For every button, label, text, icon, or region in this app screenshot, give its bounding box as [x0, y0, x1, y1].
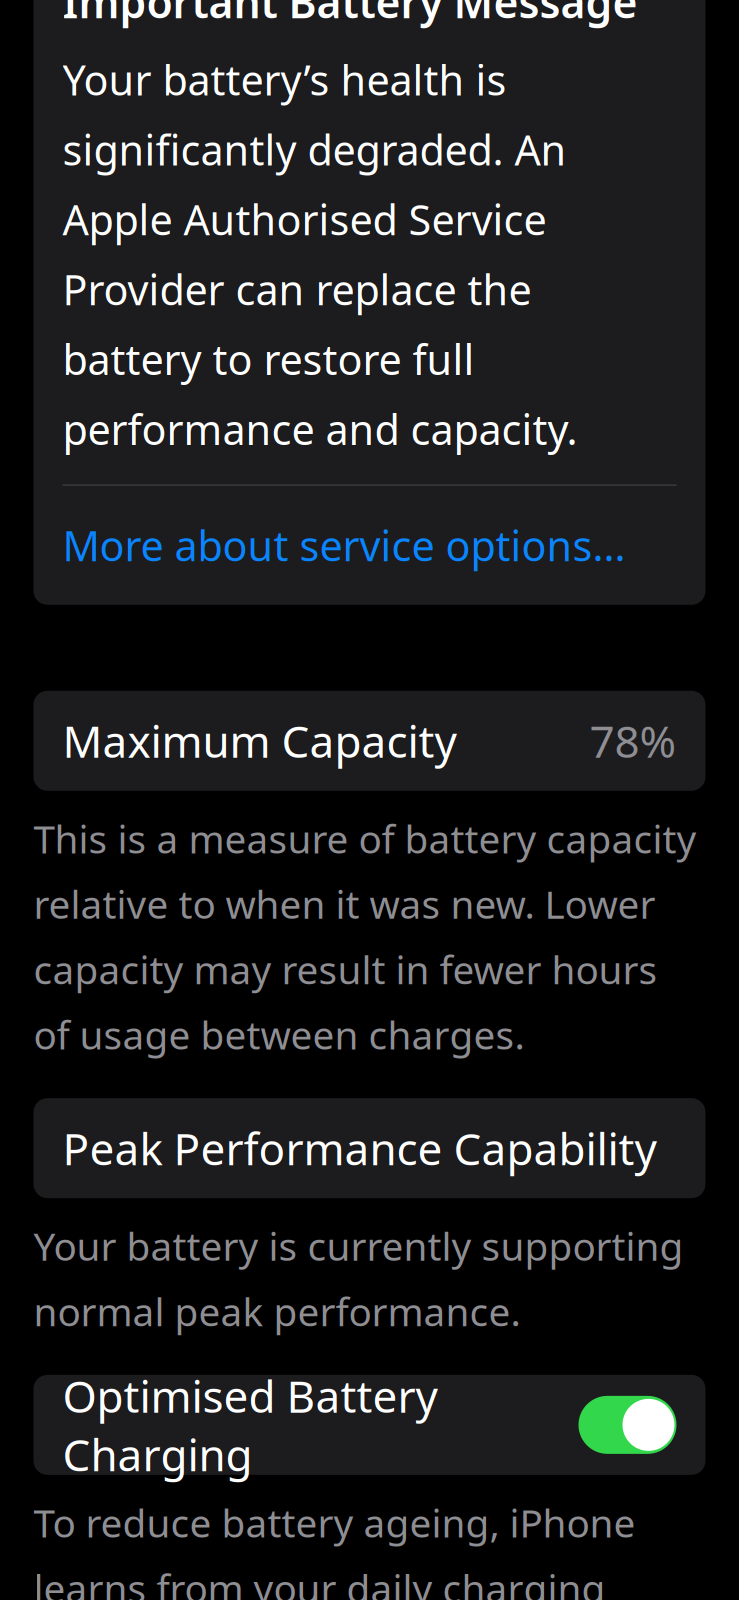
staticText: Important Battery Message: [62, 0, 637, 30]
staticText: Maximum Capacity: [62, 712, 456, 770]
staticText: To reduce battery ageing, iPhone learns …: [33, 1497, 689, 1600]
staticText: This is a measure of battery capacity re…: [33, 813, 696, 1060]
staticText: Your battery is currently supporting nor…: [33, 1220, 683, 1337]
button[interactable]: More about service options...: [62, 514, 676, 577]
staticText: 78%: [589, 712, 676, 770]
button[interactable]: Optimised Battery Charging: [33, 1375, 705, 1475]
staticText: Your battery’s health is significantly d…: [62, 52, 577, 456]
staticText: More about service options...: [62, 518, 625, 573]
button[interactable]: Peak Performance Capability: [33, 1098, 705, 1198]
staticText: Optimised Battery Charging: [62, 1366, 437, 1483]
staticText: Peak Performance Capability: [62, 1119, 656, 1177]
button[interactable]: Maximum Capacity: [33, 691, 705, 791]
